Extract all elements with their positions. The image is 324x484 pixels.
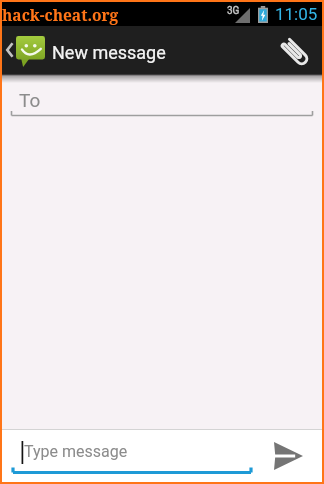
staticText: New message xyxy=(52,42,166,63)
button[interactable]: Navigate up xyxy=(2,26,45,74)
button[interactable]: Send xyxy=(254,429,322,482)
button[interactable]: Attach xyxy=(266,26,322,74)
staticText: 11:05 xyxy=(275,4,318,24)
staticText: Type message xyxy=(24,442,128,461)
staticText: hack-cheat.org xyxy=(2,4,119,25)
button[interactable]: Type message xyxy=(2,429,254,482)
staticText: 3G xyxy=(227,5,240,17)
staticText: To xyxy=(19,89,41,111)
